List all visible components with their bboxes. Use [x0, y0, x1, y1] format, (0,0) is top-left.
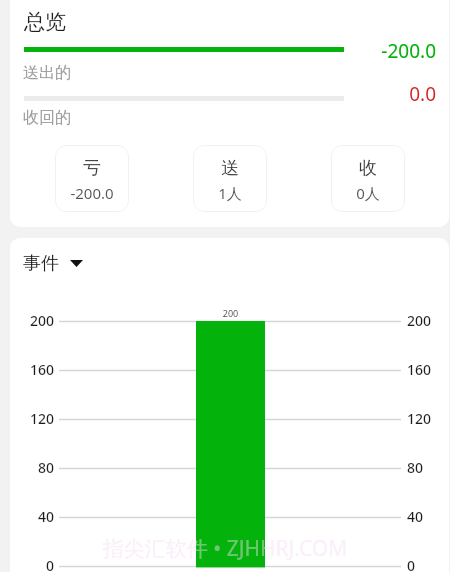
staticText: 200 — [10, 311, 54, 330]
staticText: 0.0 — [338, 81, 436, 107]
staticText: 200 — [196, 307, 265, 319]
staticText: 指尖汇软件 • ZJHHRJ.COM — [0, 534, 450, 563]
button[interactable]: 收 — [331, 145, 405, 212]
button[interactable]: 事件 — [23, 252, 83, 275]
staticText: 送 — [193, 157, 267, 180]
staticText: 0 — [407, 556, 416, 572]
staticText: 40 — [407, 507, 424, 526]
staticText: 200 — [407, 311, 432, 330]
staticText: 1人 — [193, 183, 267, 203]
staticText: 送出的 — [23, 63, 71, 83]
staticText: -200.0 — [338, 38, 436, 64]
staticText: 事件 — [23, 252, 59, 275]
staticText: 160 — [10, 360, 54, 379]
staticText: 80 — [407, 458, 424, 477]
staticText: 80 — [10, 458, 54, 477]
other: Select event type — [70, 260, 83, 267]
staticText: 总览 — [24, 9, 66, 35]
staticText: 160 — [407, 360, 432, 379]
staticText: 收 — [331, 157, 405, 180]
staticText: 120 — [10, 409, 54, 428]
staticText: 亏 — [55, 157, 129, 180]
button[interactable]: 亏 — [55, 145, 129, 212]
staticText: 0 — [10, 556, 54, 572]
staticText: -200.0 — [55, 183, 129, 203]
staticText: 120 — [407, 409, 432, 428]
staticText: 40 — [10, 507, 54, 526]
button[interactable]: 送 — [193, 145, 267, 212]
staticText: 0人 — [331, 183, 405, 203]
staticText: 收回的 — [23, 108, 71, 128]
